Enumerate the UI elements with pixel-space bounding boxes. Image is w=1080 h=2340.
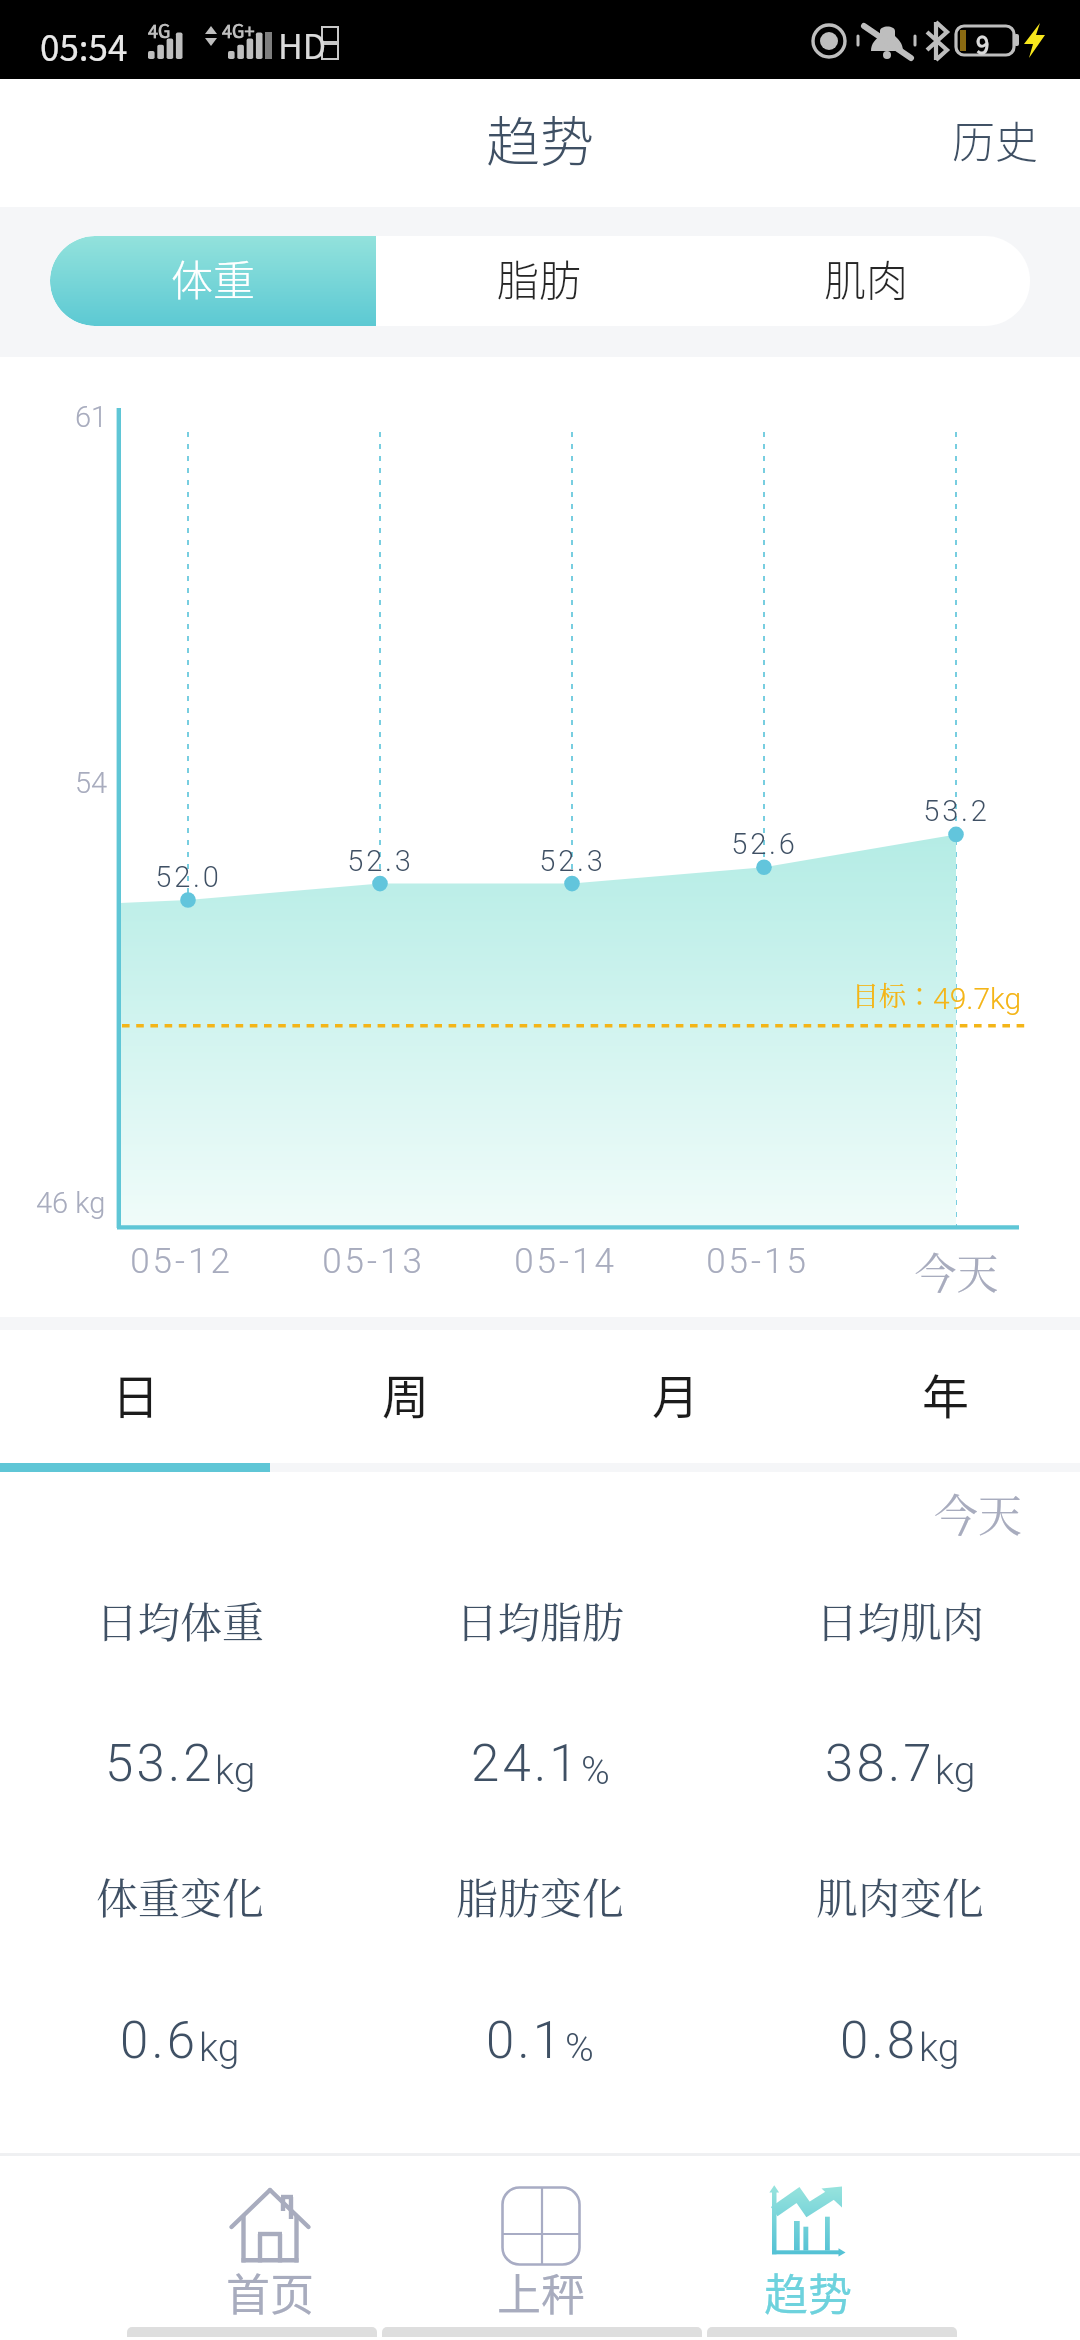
- staticText: 54: [75, 766, 108, 800]
- staticText: 9: [976, 26, 990, 61]
- staticText: 53.2: [923, 794, 990, 828]
- staticText: 趋势: [486, 99, 594, 177]
- staticText: 61: [75, 400, 108, 434]
- button[interactable]: 周: [270, 1330, 540, 1463]
- staticText: 日均肌肉: [816, 1590, 985, 1650]
- staticText: %: [565, 2025, 594, 2071]
- button[interactable]: 年: [810, 1330, 1080, 1463]
- staticText: 肌肉变化: [816, 1866, 985, 1926]
- staticText: 46 kg: [36, 1186, 106, 1220]
- staticText: 今天: [934, 1481, 1022, 1544]
- button[interactable]: 历史: [912, 88, 1080, 198]
- staticText: 52.3: [347, 844, 414, 878]
- staticText: kg: [215, 1748, 256, 1794]
- staticText: 05-15: [706, 1241, 809, 1282]
- staticText: 49.7kg: [933, 981, 1022, 1016]
- button[interactable]: 脂肪: [376, 236, 703, 326]
- staticText: 年: [922, 1359, 969, 1427]
- staticText: 历史: [952, 108, 1038, 170]
- staticText: 今天: [914, 1241, 999, 1301]
- staticText: 月: [652, 1359, 699, 1427]
- staticText: 首页: [226, 2260, 314, 2324]
- staticText: HD: [278, 20, 327, 69]
- staticText: 52.3: [539, 844, 606, 878]
- staticText: 目标：: [852, 975, 933, 1014]
- staticText: 05-12: [130, 1241, 233, 1282]
- staticText: 脂肪变化: [456, 1866, 625, 1926]
- button[interactable]: 体重: [50, 236, 376, 326]
- staticText: kg: [199, 2025, 240, 2071]
- staticText: %: [581, 1748, 610, 1794]
- button[interactable]: 月: [540, 1330, 810, 1463]
- staticText: 肌肉: [824, 247, 909, 308]
- staticText: kg: [935, 1748, 976, 1794]
- staticText: 上秤: [497, 2260, 585, 2324]
- staticText: 52.0: [155, 860, 222, 894]
- button[interactable]: 趋势: [718, 2156, 898, 2340]
- staticText: 24.1: [471, 1734, 581, 1794]
- staticText: 脂肪: [497, 247, 582, 308]
- staticText: 日均体重: [96, 1590, 265, 1650]
- staticText: 日: [112, 1359, 159, 1427]
- staticText: 0.6: [120, 2011, 199, 2071]
- staticText: 05-14: [514, 1241, 617, 1282]
- staticText: 周: [382, 1359, 429, 1427]
- button[interactable]: 首页: [180, 2156, 360, 2340]
- staticText: 38.7: [825, 1734, 935, 1794]
- staticText: 体重: [171, 247, 256, 308]
- staticText: 05:54: [40, 20, 128, 71]
- staticText: kg: [919, 2025, 960, 2071]
- button[interactable]: 日: [0, 1330, 270, 1463]
- staticText: 05-13: [322, 1241, 425, 1282]
- staticText: 趋势: [764, 2260, 852, 2324]
- staticText: 0.1: [486, 2011, 565, 2071]
- button[interactable]: 上秤: [451, 2156, 631, 2340]
- staticText: 4G: [148, 17, 171, 43]
- staticText: 53.2: [105, 1734, 215, 1794]
- staticText: 4G+: [222, 17, 255, 43]
- button[interactable]: 肌肉: [703, 236, 1030, 326]
- staticText: 日均脂肪: [456, 1590, 625, 1650]
- staticText: 52.6: [731, 827, 798, 861]
- staticText: 0.8: [840, 2011, 919, 2071]
- staticText: 体重变化: [96, 1866, 265, 1926]
